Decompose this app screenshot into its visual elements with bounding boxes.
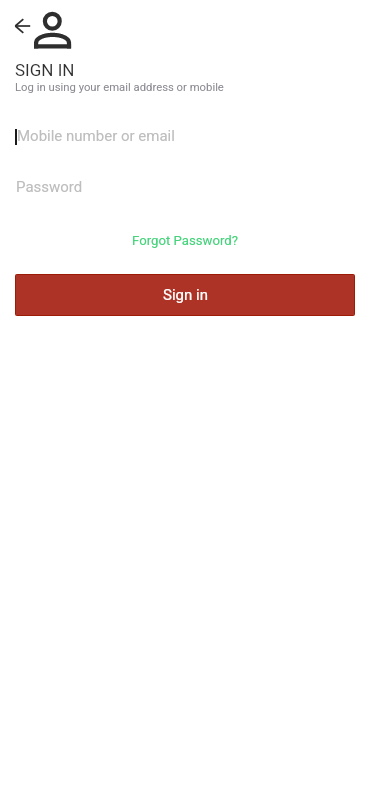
button[interactable]: Password bbox=[0, 173, 369, 201]
staticText: Password bbox=[16, 178, 83, 196]
staticText: Sign in bbox=[163, 286, 208, 304]
button[interactable]: Forgot Password? bbox=[125, 229, 242, 251]
staticText: SIGN IN bbox=[15, 60, 75, 80]
button[interactable]: Mobile number or email bbox=[0, 122, 369, 150]
staticText: Log in using your email address or mobil… bbox=[15, 81, 224, 94]
button[interactable]: Back bbox=[3, 14, 39, 38]
button[interactable]: Sign in bbox=[15, 274, 355, 316]
staticText: Forgot Password? bbox=[132, 233, 239, 248]
staticText: Mobile number or email bbox=[17, 127, 175, 145]
